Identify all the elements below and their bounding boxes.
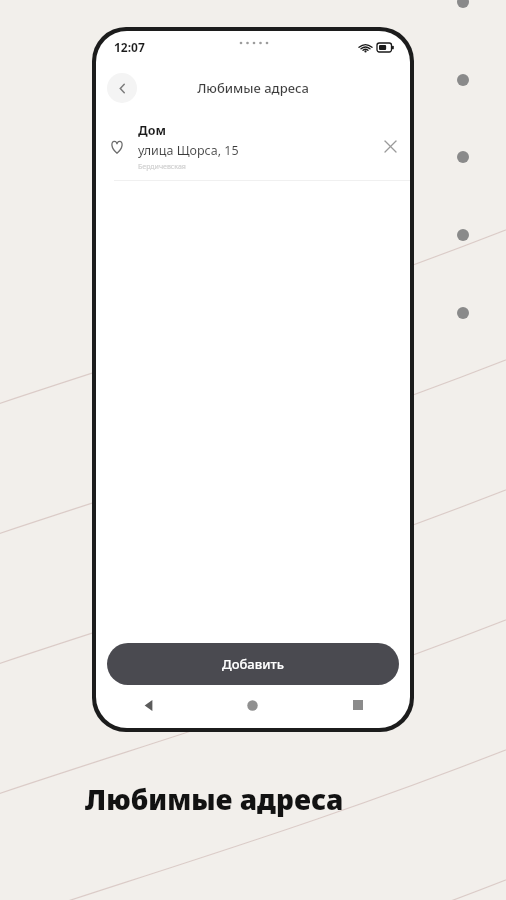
button[interactable]: Удалить (370, 113, 410, 180)
staticText: Любимые адреса (197, 79, 309, 97)
button[interactable]: Недавние (305, 685, 410, 725)
staticText: Бердичевская (138, 162, 186, 172)
staticText: улица Щорса, 15 (138, 142, 239, 159)
button[interactable]: Дом (96, 113, 410, 180)
staticText: 12:07 (114, 39, 145, 55)
button[interactable]: Добавить (107, 643, 399, 685)
staticText: Любимые адреса (85, 780, 344, 818)
button[interactable]: Домой (200, 685, 305, 725)
staticText: Дом (138, 122, 166, 139)
staticText: Добавить (222, 655, 284, 673)
button[interactable]: Назад (96, 685, 200, 725)
button[interactable]: Назад (107, 73, 137, 103)
